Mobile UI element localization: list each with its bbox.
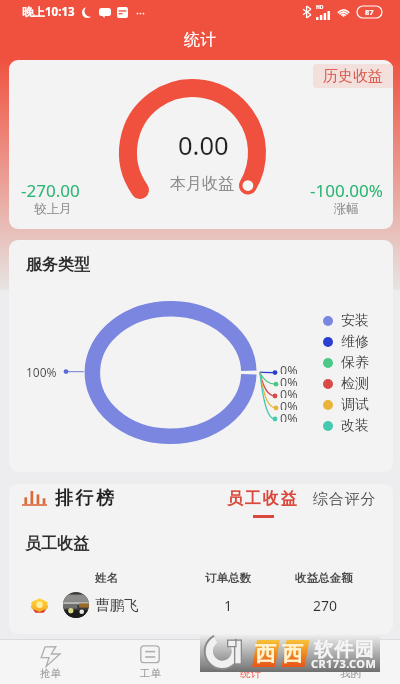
staticText: 0.00 [178, 128, 229, 163]
staticText: 员工收益 [25, 534, 89, 554]
staticText: 统计 [240, 667, 261, 680]
button[interactable]: Grab orders [0, 640, 100, 684]
staticText: 保养 [341, 354, 369, 372]
staticText: 涨幅 [334, 201, 359, 217]
staticText: -270.00 [21, 179, 80, 202]
staticText: 软件园 [314, 638, 375, 662]
staticText: 改装 [341, 417, 369, 435]
staticText: 西 [282, 641, 303, 667]
staticText: -100.00% [310, 179, 383, 202]
button[interactable]: 员工收益 [227, 489, 299, 518]
staticText: 排行榜 [55, 487, 117, 510]
staticText: 87 [365, 7, 374, 17]
staticText: 工单 [140, 667, 161, 680]
staticText: 安装 [341, 312, 369, 330]
staticText: 0% [280, 398, 298, 410]
staticText: 抢单 [40, 667, 61, 680]
staticText: 270 [313, 596, 338, 615]
staticText: 1 [224, 596, 233, 615]
button[interactable]: 综合评分 [313, 490, 377, 509]
staticText: 曹鹏飞 [95, 596, 139, 614]
staticText: 较上月 [34, 201, 72, 217]
staticText: 检测 [341, 375, 369, 393]
staticText: 员工收益 [227, 489, 299, 509]
staticText: 姓名 [95, 571, 118, 583]
staticText: 100% [26, 364, 57, 380]
button[interactable]: Profile [300, 640, 400, 684]
staticText: HD [316, 4, 324, 11]
button[interactable]: Statistics [200, 640, 300, 684]
staticText: 收益总金额 [295, 571, 353, 583]
staticText: 维修 [341, 333, 369, 351]
staticText: 0% [280, 374, 298, 386]
staticText: 0% [280, 410, 298, 422]
staticText: 0% [280, 386, 298, 398]
staticText: 调试 [341, 396, 369, 414]
staticText: CR173.COM [311, 656, 377, 671]
staticText: ··· [136, 5, 145, 20]
staticText: 订单总数 [205, 571, 251, 583]
staticText: 综合评分 [313, 490, 377, 509]
staticText: 0% [280, 362, 298, 374]
staticText: 西 [255, 641, 276, 667]
staticText: 服务类型 [26, 255, 90, 275]
staticText: 本月收益 [170, 174, 234, 194]
button[interactable]: 历史收益 [313, 64, 393, 88]
staticText: 我的 [340, 667, 361, 680]
staticText: 晚上10:13 [22, 4, 75, 20]
staticText: 统计 [184, 30, 216, 50]
button[interactable]: Work orders [100, 640, 200, 684]
staticText: 历史收益 [323, 67, 383, 86]
